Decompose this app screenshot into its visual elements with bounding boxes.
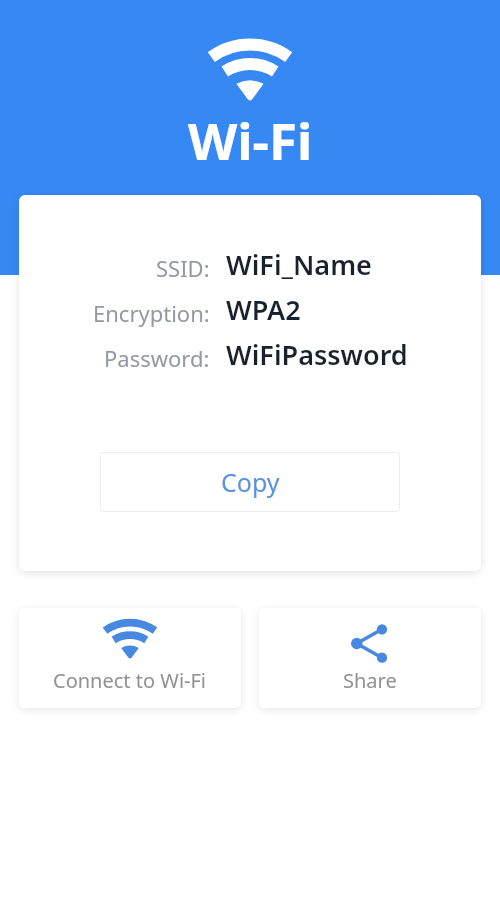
button[interactable]: Connect to Wi-Fi [19, 608, 241, 708]
staticText: Copy [221, 465, 280, 499]
staticText: Password: [104, 343, 210, 373]
staticText: SSID: [156, 253, 210, 283]
button[interactable]: Share [259, 608, 481, 708]
staticText: WiFi_Name [226, 246, 372, 283]
staticText: Connect to Wi-Fi [53, 667, 207, 694]
staticText: Wi-Fi [188, 105, 313, 174]
staticText: WiFiPassword [226, 336, 408, 373]
other: Wi-Fi signal [209, 39, 291, 101]
button[interactable]: Copy [100, 452, 400, 512]
staticText: Share [343, 667, 397, 694]
staticText: WPA2 [226, 291, 301, 328]
other: Share [350, 623, 391, 664]
staticText: Encryption: [93, 298, 210, 328]
